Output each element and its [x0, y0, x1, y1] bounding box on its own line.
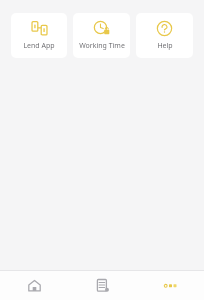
staticText: Lend App [23, 41, 55, 51]
button[interactable]: Documents [68, 271, 136, 300]
button[interactable]: More [136, 271, 204, 300]
button[interactable]: Working Time [73, 13, 130, 58]
button[interactable]: Lend App [11, 13, 67, 58]
button[interactable]: Help [136, 13, 193, 58]
button[interactable]: Home [0, 271, 68, 300]
staticText: Working Time [79, 41, 125, 51]
staticText: Help [157, 41, 173, 51]
